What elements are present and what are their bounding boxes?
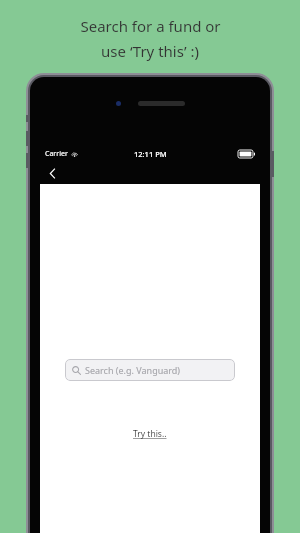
button[interactable]: Back bbox=[42, 163, 62, 183]
staticText: Try this.. bbox=[133, 428, 167, 440]
staticText: 12:11 PM bbox=[134, 149, 167, 159]
staticText: Search for a fund or bbox=[80, 16, 221, 36]
button[interactable]: Try this.. bbox=[127, 425, 173, 443]
button[interactable]: Search (e.g. Vanguard) bbox=[65, 359, 235, 381]
staticText: Carrier bbox=[45, 149, 68, 159]
staticText: Search (e.g. Vanguard) bbox=[85, 364, 181, 376]
staticText: use ‘Try this’ :) bbox=[101, 41, 199, 61]
